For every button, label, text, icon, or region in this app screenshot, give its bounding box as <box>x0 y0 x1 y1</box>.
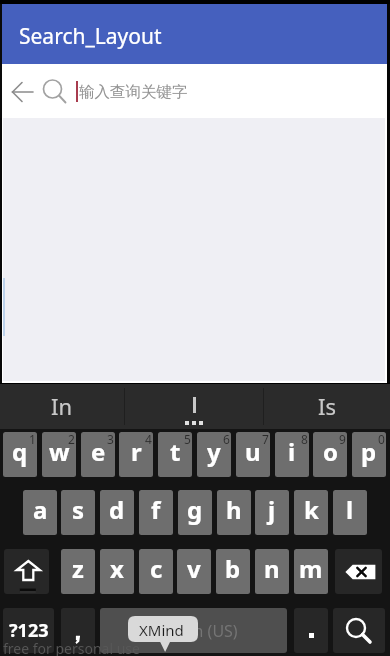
button[interactable]: j <box>255 490 289 535</box>
staticText: z <box>72 552 84 585</box>
button[interactable]: c <box>139 549 173 594</box>
staticText: l <box>346 493 354 526</box>
staticText: u <box>245 435 261 468</box>
button[interactable]: w <box>42 432 76 477</box>
button[interactable]: s <box>61 490 95 535</box>
staticText: ?123 <box>9 618 49 643</box>
button[interactable]: r <box>119 432 153 477</box>
staticText: 输入查询关键字 <box>79 82 188 102</box>
button[interactable]: In <box>0 384 124 429</box>
button[interactable]: q <box>3 432 37 477</box>
button[interactable] <box>125 384 263 429</box>
button[interactable]: z <box>61 549 95 594</box>
button[interactable]: Shift <box>4 549 49 594</box>
button[interactable]: x <box>100 549 134 594</box>
button[interactable]: Search <box>333 608 385 653</box>
staticText: 5 <box>184 432 191 447</box>
button[interactable]: English (US) <box>100 608 287 653</box>
staticText: 9 <box>339 432 346 447</box>
staticText: r <box>131 435 142 468</box>
button[interactable]: g <box>178 490 212 535</box>
staticText: c <box>150 552 163 585</box>
button[interactable]: Backspace <box>335 549 382 594</box>
staticText: In <box>51 391 73 421</box>
staticText: a <box>33 493 48 526</box>
staticText: p <box>361 435 377 468</box>
staticText: 4 <box>145 432 152 447</box>
button[interactable]: d <box>100 490 134 535</box>
button[interactable]: k <box>294 490 328 535</box>
button[interactable]: v <box>177 549 211 594</box>
staticText: g <box>187 493 203 526</box>
staticText: m <box>299 552 323 585</box>
staticText: q <box>12 435 28 468</box>
button[interactable]: i <box>275 432 309 477</box>
staticText: y <box>207 435 221 468</box>
staticText: 7 <box>262 432 269 447</box>
staticText: h <box>226 493 242 526</box>
staticText: f <box>151 493 161 526</box>
staticText: 0 <box>378 432 385 447</box>
staticText: i <box>288 435 296 468</box>
staticText: j <box>268 493 276 526</box>
button[interactable] <box>294 608 328 653</box>
button[interactable]: h <box>217 490 251 535</box>
staticText: 6 <box>223 432 230 447</box>
staticText: free for personal use <box>3 639 140 656</box>
staticText: 8 <box>301 432 308 447</box>
button[interactable]: Back <box>8 77 38 107</box>
staticText: English (US) <box>149 620 238 642</box>
staticText: v <box>187 552 201 585</box>
button[interactable]: m <box>294 549 328 594</box>
button[interactable]: Search <box>40 75 70 105</box>
button[interactable]: e <box>81 432 115 477</box>
staticText: b <box>225 552 241 585</box>
button[interactable]: l <box>333 490 367 535</box>
staticText: e <box>91 435 106 468</box>
staticText: k <box>304 493 319 526</box>
staticText: XMind <box>139 620 184 640</box>
staticText: t <box>170 435 181 468</box>
staticText: Is <box>318 391 336 421</box>
staticText: 2 <box>68 432 75 447</box>
staticText: Search_Layout <box>19 22 162 51</box>
staticText: o <box>323 435 338 468</box>
button[interactable] <box>61 608 95 653</box>
staticText: 3 <box>107 432 114 447</box>
button[interactable]: ?123 <box>3 608 54 653</box>
staticText: x <box>110 552 124 585</box>
staticText: n <box>264 552 280 585</box>
staticText: 1 <box>29 432 36 447</box>
button[interactable]: b <box>216 549 250 594</box>
staticText: w <box>49 435 70 468</box>
button[interactable]: u <box>236 432 270 477</box>
button[interactable]: t <box>158 432 192 477</box>
button[interactable]: o <box>313 432 347 477</box>
staticText: s <box>72 493 85 526</box>
button[interactable]: f <box>139 490 173 535</box>
button[interactable]: y <box>197 432 231 477</box>
staticText: d <box>109 493 125 526</box>
button[interactable]: a <box>23 490 57 535</box>
button[interactable]: p <box>352 432 386 477</box>
button[interactable]: Is <box>264 384 390 429</box>
button[interactable]: n <box>255 549 289 594</box>
